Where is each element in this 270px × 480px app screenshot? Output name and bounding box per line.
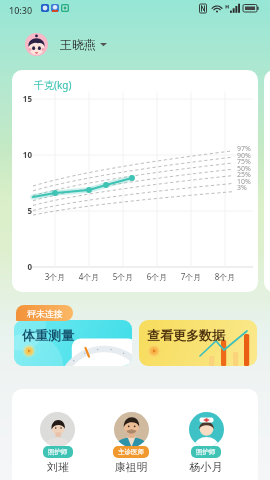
staticText: 查看更多数据 — [147, 327, 225, 343]
staticText: 97% — [237, 144, 251, 154]
button[interactable] — [114, 412, 149, 447]
staticText: 25% — [237, 170, 251, 180]
staticText: 10:30 — [9, 4, 33, 16]
button[interactable]: 体重测量 — [14, 320, 132, 366]
staticText: 照护师 — [48, 448, 68, 456]
staticText: 75% — [237, 157, 251, 167]
staticText: 0 — [14, 261, 32, 272]
staticText: 康祖明 — [101, 460, 161, 474]
staticText: 50% — [237, 164, 251, 174]
staticText: 4个月 — [74, 271, 104, 282]
button[interactable]: 查看更多数据 — [139, 320, 257, 366]
button[interactable] — [189, 412, 224, 447]
button[interactable] — [40, 412, 75, 447]
staticText: 王晓燕 — [60, 37, 96, 52]
staticText: 刘璀 — [28, 460, 88, 474]
staticText: 杨小月 — [176, 460, 236, 474]
staticText: 体重测量 — [22, 327, 74, 343]
staticText: 照护师 — [196, 448, 216, 456]
staticText: 6个月 — [142, 271, 172, 282]
staticText: 主诊医师 — [118, 448, 144, 456]
staticText: 3个月 — [40, 271, 70, 282]
staticText: 10% — [237, 177, 251, 187]
button[interactable]: 千克(kg) — [12, 70, 258, 292]
staticText: 3% — [237, 183, 247, 193]
button[interactable]: 王晓燕 — [25, 33, 107, 56]
staticText: 8个月 — [210, 271, 240, 282]
staticText: 秤未连接 — [27, 308, 63, 319]
staticText: 15 — [14, 93, 32, 104]
staticText: 7个月 — [176, 271, 206, 282]
staticText: 10 — [14, 149, 32, 160]
staticText: 5 — [14, 205, 32, 216]
staticText: 5个月 — [108, 271, 138, 282]
staticText: 千克(kg) — [34, 78, 72, 92]
staticText: 90% — [237, 151, 251, 161]
